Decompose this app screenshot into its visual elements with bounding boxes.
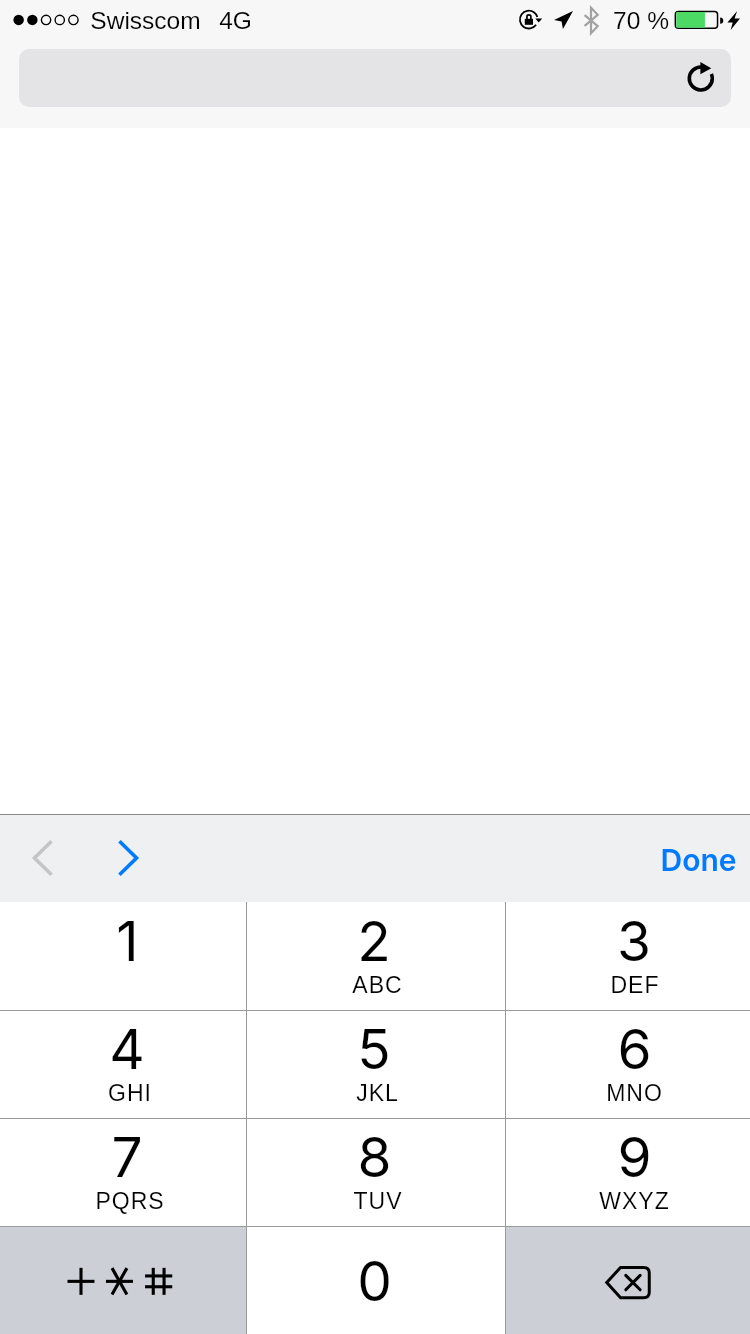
button[interactable]: Next field <box>85 814 171 902</box>
staticText: Swisscom <box>90 7 201 34</box>
staticText: 7 <box>111 1124 143 1191</box>
button[interactable]: 0 <box>247 1226 505 1334</box>
staticText: PQRS <box>95 1188 165 1214</box>
button[interactable]: Reload page <box>19 49 731 107</box>
button[interactable]: 6 <box>506 1010 750 1118</box>
button[interactable]: Reload page <box>678 56 722 100</box>
staticText: MNO <box>606 1080 663 1106</box>
staticText: 0 <box>357 1248 392 1315</box>
staticText: Done <box>660 842 737 878</box>
staticText: 4G <box>219 7 252 34</box>
staticText: ABC <box>352 972 403 998</box>
button[interactable]: Plus, star, hash <box>0 1226 246 1334</box>
button[interactable]: 3 <box>506 902 750 1010</box>
button[interactable]: Backspace <box>506 1226 750 1334</box>
button[interactable]: 8 <box>247 1118 505 1226</box>
button[interactable]: 2 <box>247 902 505 1010</box>
staticText: 6 <box>617 1016 652 1083</box>
staticText: GHI <box>108 1080 152 1106</box>
staticText: 70 % <box>613 7 669 34</box>
button[interactable]: Previous field <box>0 814 85 902</box>
staticText: 3 <box>617 908 651 975</box>
staticText: TUV <box>353 1188 402 1214</box>
staticText: 4 <box>109 1016 145 1083</box>
staticText: JKL <box>356 1080 399 1106</box>
staticText: 1 <box>116 908 139 975</box>
button[interactable]: 4 <box>0 1010 246 1118</box>
button[interactable]: 9 <box>506 1118 750 1226</box>
button[interactable]: Done <box>660 814 737 902</box>
button[interactable]: 7 <box>0 1118 246 1226</box>
staticText: 2 <box>357 908 391 975</box>
staticText: 9 <box>617 1124 652 1191</box>
staticText: 5 <box>357 1016 391 1083</box>
staticText: 8 <box>357 1124 392 1191</box>
staticText: WXYZ <box>599 1188 670 1214</box>
staticText: DEF <box>610 972 659 998</box>
button[interactable]: 1 <box>0 902 246 1010</box>
button[interactable]: 5 <box>247 1010 505 1118</box>
